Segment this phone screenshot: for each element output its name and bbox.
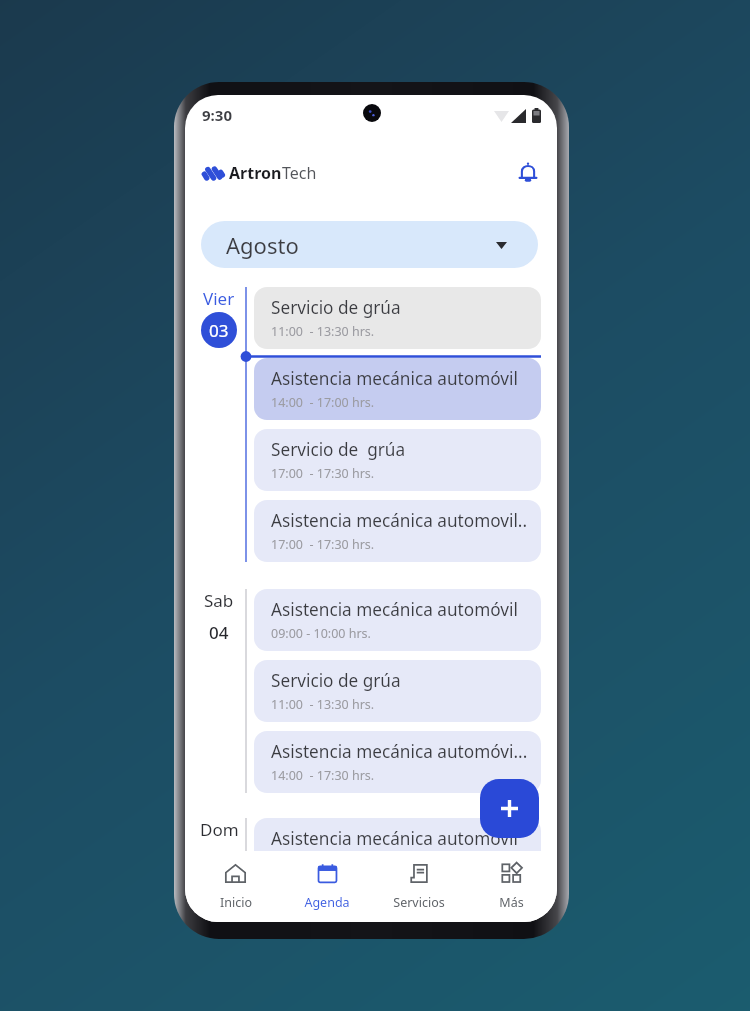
button[interactable]: Servicio de grúa	[254, 287, 541, 349]
staticText: Vier	[203, 287, 235, 310]
button[interactable]: Agenda	[281, 851, 373, 922]
staticText: Dom	[200, 818, 239, 841]
staticText: 09:00 - 10:00 hrs.	[271, 625, 371, 642]
staticText: 11:00 - 13:30 hrs.	[271, 323, 375, 340]
button[interactable]: Asistencia mecánica automóvil	[254, 358, 541, 420]
staticText: Asistencia mecánica automovil..	[271, 509, 528, 532]
staticText: 14:00 - 17:00 hrs.	[271, 394, 375, 411]
staticText: Servicio de grúa	[271, 438, 406, 461]
staticText: 04	[209, 621, 229, 644]
staticText: Asistencia mecánica automóvi...	[271, 740, 528, 763]
staticText: 17:00 - 17:30 hrs.	[271, 536, 375, 553]
button[interactable]: Asistencia mecánica automóvi...	[254, 731, 541, 793]
staticText: Sab	[204, 589, 234, 612]
button[interactable]: Más	[465, 851, 557, 922]
staticText: Servicios	[393, 894, 445, 911]
staticText: Asistencia mecánica automóvil	[271, 598, 518, 621]
staticText: Inicio	[220, 894, 252, 911]
staticText: Artron	[229, 162, 282, 184]
button[interactable]: Asistencia mecánica automovil..	[254, 500, 541, 562]
staticText: Agosto	[226, 230, 299, 260]
staticText: 09:00 - 10:00 hrs.	[271, 854, 371, 871]
staticText: 9:30	[202, 105, 232, 125]
button[interactable]: Inicio	[190, 851, 281, 922]
staticText: 17:00 - 17:30 hrs.	[271, 465, 375, 482]
staticText: Más	[499, 894, 524, 911]
staticText: 11:00 - 13:30 hrs.	[271, 696, 375, 713]
button[interactable]: Servicio de grúa	[254, 429, 541, 491]
staticText: Servicio de grúa	[271, 669, 401, 692]
staticText: Agenda	[304, 894, 350, 911]
button[interactable]: Agregar evento	[480, 779, 539, 838]
staticText: Tech	[282, 162, 317, 184]
staticText: 03	[209, 319, 229, 342]
staticText: 05	[209, 850, 229, 873]
button[interactable]: Servicios	[373, 851, 465, 922]
button[interactable]: Notificaciones	[510, 155, 546, 191]
button[interactable]: Asistencia mecánica automovil	[254, 818, 541, 880]
button[interactable]: Agosto	[201, 221, 538, 268]
staticText: Asistencia mecánica automóvil	[271, 367, 518, 390]
button[interactable]: Asistencia mecánica automóvil	[254, 589, 541, 651]
button[interactable]: Servicio de grúa	[254, 660, 541, 722]
staticText: Asistencia mecánica automovil	[271, 827, 518, 850]
staticText: Servicio de grúa	[271, 296, 401, 319]
staticText: 14:00 - 17:30 hrs.	[271, 767, 375, 784]
